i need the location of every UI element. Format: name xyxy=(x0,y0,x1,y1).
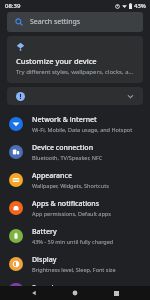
staticText: Display xyxy=(32,255,57,265)
button[interactable]: Recent apps xyxy=(109,286,123,300)
button[interactable]: Sound xyxy=(0,278,150,300)
staticText: Network & internet xyxy=(32,115,97,125)
staticText: 43% - 59 min until fully charged xyxy=(32,238,114,245)
staticText: App permissions, Default apps xyxy=(32,210,111,217)
staticText: Appearance xyxy=(32,171,72,181)
button[interactable]: Network & internet xyxy=(0,110,150,138)
staticText: Apps & notifications xyxy=(32,199,100,209)
button[interactable]: Appearance xyxy=(0,166,150,194)
button[interactable]: Display xyxy=(0,250,150,278)
staticText: Wi-Fi, Mobile, Data usage, and Hotspot xyxy=(32,126,133,133)
staticText: Battery xyxy=(32,227,57,237)
button[interactable]: Back xyxy=(27,286,41,300)
button[interactable]: Device connection xyxy=(0,138,150,166)
button[interactable]: Apps & notifications xyxy=(0,194,150,222)
staticText: Brightness level, Sleep, Font size xyxy=(32,266,116,273)
other: Tips xyxy=(16,92,25,101)
button[interactable]: Home xyxy=(68,286,82,300)
staticText: Try different styles, wallpapers, clocks… xyxy=(16,68,134,76)
staticText: Bluetooth, TV/Speaker, NFC xyxy=(32,154,103,161)
staticText: 08:39 xyxy=(5,2,21,10)
staticText: Search settings xyxy=(30,17,81,27)
staticText: Sound xyxy=(32,283,54,293)
button[interactable]: Battery xyxy=(0,222,150,250)
staticText: Device connection xyxy=(32,143,94,153)
button[interactable]: Search settings xyxy=(7,12,143,32)
staticText: Customize your device xyxy=(16,56,97,66)
other: Expand xyxy=(127,93,134,100)
staticText: Audio, Ringtone, Do not disturb xyxy=(32,294,114,295)
button[interactable]: Customize your device xyxy=(7,36,143,83)
staticText: 43% xyxy=(134,2,146,10)
staticText: Wallpaper, Widgets, Shortcuts xyxy=(32,182,109,189)
button[interactable]: Tips xyxy=(7,87,143,105)
